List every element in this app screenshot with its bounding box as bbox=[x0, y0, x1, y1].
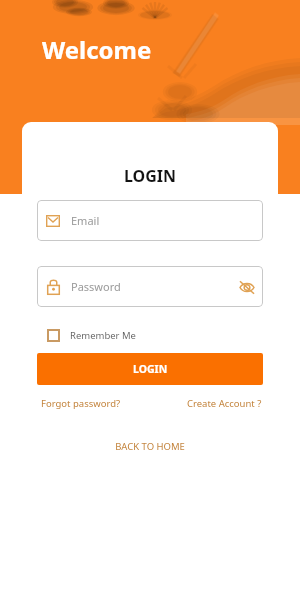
staticText: Password bbox=[71, 279, 121, 294]
button[interactable]: Forgot password? bbox=[37, 397, 125, 410]
staticText: Welcome bbox=[42, 33, 152, 66]
button[interactable]: LOGIN bbox=[37, 353, 263, 385]
button[interactable]: Remember Me bbox=[47, 329, 136, 342]
button[interactable]: Create Account ? bbox=[183, 397, 263, 410]
staticText: Email bbox=[71, 213, 100, 228]
staticText: Remember Me bbox=[70, 329, 136, 342]
button[interactable]: Password bbox=[37, 266, 263, 307]
staticText: LOGIN bbox=[22, 165, 278, 187]
button[interactable]: BACK TO HOME bbox=[22, 440, 278, 453]
button[interactable]: Show password bbox=[234, 274, 260, 300]
button[interactable]: Email bbox=[37, 200, 263, 241]
staticText: LOGIN bbox=[133, 362, 168, 376]
